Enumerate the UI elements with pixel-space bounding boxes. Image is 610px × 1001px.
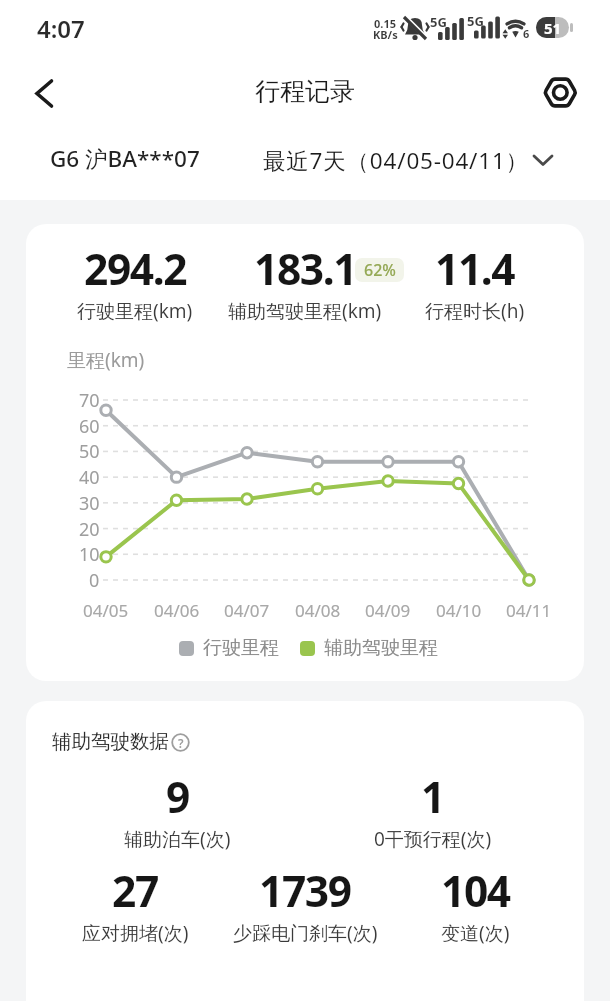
button[interactable] [26,74,66,114]
staticText: 04/08 [295,599,341,622]
staticText: 里程(km) [67,347,145,373]
staticText: 51 [544,18,562,38]
staticText: 62% [364,259,396,281]
staticText: 0.15 [374,16,396,31]
staticText: 9 [166,768,189,826]
staticText: 辅助驾驶里程(km) [228,298,382,324]
staticText: 行程记录 [255,76,355,107]
staticText: 60 [79,414,100,438]
staticText: 27 [112,862,158,920]
staticText: 辅助驾驶里程 [324,636,438,660]
staticText: G6 沪BA***07 [50,143,200,174]
staticText: 少踩电门刹车(次) [233,920,378,946]
staticText: 最近7天（04/05-04/11） [263,145,529,176]
staticText: 11.4 [435,240,515,298]
button[interactable] [540,72,582,114]
staticText: 0 [89,568,100,592]
staticText: 行程时长(h) [425,298,525,324]
staticText: 变道(次) [441,920,510,946]
staticText: 10 [79,542,100,566]
staticText: 20 [79,517,100,541]
staticText: 6 [523,26,530,41]
staticText: 行驶里程 [203,636,279,660]
button[interactable] [264,140,560,182]
staticText: 0干预行程(次) [374,826,492,852]
staticText: 1 [421,768,444,826]
staticText: 5G [430,13,447,31]
staticText: 4:07 [37,12,85,45]
staticText: 104 [441,862,510,920]
staticText: 70 [79,388,100,412]
staticText: 应对拥堵(次) [82,920,189,946]
staticText: 5G [467,12,484,30]
staticText: 04/09 [365,599,411,622]
staticText: 1739 [259,862,351,920]
staticText: ? [178,735,184,751]
staticText: 30 [79,491,100,515]
staticText: KB/s [373,27,398,42]
staticText: 183.1 [254,240,357,298]
staticText: 行驶里程(km) [77,298,193,324]
staticText: 04/11 [506,599,552,622]
staticText: 50 [79,439,100,463]
staticText: 04/07 [224,599,270,622]
staticText: 04/06 [154,599,200,622]
staticText: 04/05 [83,599,129,622]
staticText: 40 [79,465,100,489]
staticText: 辅助驾驶数据 [52,729,169,754]
staticText: 294.2 [84,240,187,298]
staticText: 辅助泊车(次) [124,826,231,852]
staticText: 04/10 [436,599,482,622]
